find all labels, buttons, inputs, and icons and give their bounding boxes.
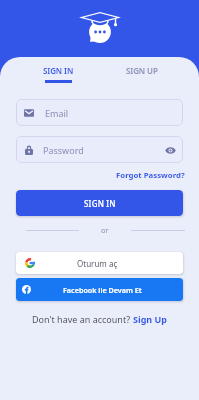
staticText: Oturum aç bbox=[77, 258, 118, 269]
button[interactable]: SIGN IN bbox=[16, 190, 183, 216]
staticText: SIGN UP bbox=[126, 65, 158, 76]
staticText: SIGN IN bbox=[84, 198, 116, 209]
staticText: Don't have an account? bbox=[32, 313, 133, 325]
button[interactable]: SIGN UP bbox=[100, 60, 184, 86]
staticText: or bbox=[101, 225, 109, 235]
staticText: Email bbox=[45, 107, 69, 119]
button[interactable]: Password bbox=[16, 136, 183, 163]
button[interactable]: Email bbox=[16, 99, 183, 126]
button[interactable]: Show password bbox=[164, 144, 176, 156]
button[interactable]: SIGN IN bbox=[16, 60, 100, 86]
staticText: Facebook ile Devam Et bbox=[63, 285, 142, 295]
staticText: Forgot Password? bbox=[116, 170, 185, 181]
staticText: Sign Up bbox=[133, 313, 168, 325]
button[interactable]: Oturum aç bbox=[16, 252, 183, 274]
staticText: Password bbox=[43, 144, 84, 156]
staticText: SIGN IN bbox=[43, 65, 74, 76]
button[interactable]: Forgot Password? bbox=[105, 168, 185, 182]
button[interactable]: Sign Up bbox=[133, 313, 168, 325]
button[interactable]: Facebook ile Devam Et bbox=[16, 278, 183, 301]
